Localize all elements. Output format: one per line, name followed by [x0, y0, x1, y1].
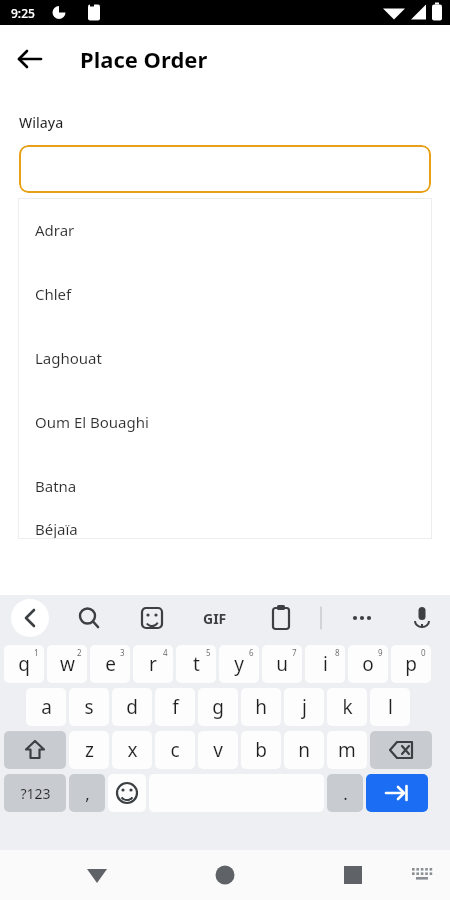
staticText: x: [127, 737, 138, 763]
button[interactable]: Béjaïa: [18, 518, 432, 539]
button[interactable]: t: [176, 645, 216, 683]
button[interactable]: h: [241, 688, 281, 726]
button[interactable]: s: [69, 688, 109, 726]
button[interactable]: f: [155, 688, 195, 726]
staticText: u: [276, 651, 288, 677]
staticText: Oum El Bouaghi: [35, 412, 149, 432]
button[interactable]: GIF: [203, 609, 227, 628]
button[interactable]: More options: [342, 598, 382, 638]
staticText: Place Order: [80, 44, 208, 74]
staticText: k: [342, 694, 353, 720]
button[interactable]: w: [47, 645, 87, 683]
button[interactable]: e: [90, 645, 130, 683]
staticText: Adrar: [35, 220, 75, 240]
button[interactable]: g: [198, 688, 238, 726]
staticText: t: [193, 651, 200, 677]
button[interactable]: Stickers: [132, 598, 172, 638]
button[interactable]: ?123: [4, 774, 66, 812]
button[interactable]: .: [327, 774, 363, 812]
button[interactable]: Emoji: [108, 774, 146, 812]
staticText: y: [234, 651, 244, 677]
staticText: e: [105, 651, 116, 677]
button[interactable]: j: [284, 688, 324, 726]
staticText: 9: [378, 647, 383, 658]
button[interactable]: a: [26, 688, 66, 726]
staticText: Chlef: [35, 284, 72, 304]
staticText: a: [41, 694, 52, 720]
staticText: j: [302, 694, 307, 720]
button[interactable]: Batna: [18, 454, 432, 518]
button[interactable]: Oum El Bouaghi: [18, 390, 432, 454]
button[interactable]: Recents: [331, 853, 375, 897]
staticText: 1: [34, 647, 39, 658]
staticText: q: [18, 651, 30, 677]
button[interactable]: [19, 145, 431, 193]
staticText: n: [298, 737, 310, 763]
button[interactable]: d: [112, 688, 152, 726]
staticText: Batna: [35, 476, 77, 496]
button[interactable]: o: [348, 645, 388, 683]
button[interactable]: i: [305, 645, 345, 683]
button[interactable]: q: [4, 645, 44, 683]
button[interactable]: Shift: [4, 731, 66, 769]
staticText: d: [126, 694, 138, 720]
staticText: 6: [249, 647, 254, 658]
staticText: z: [85, 737, 94, 763]
staticText: b: [255, 737, 267, 763]
button[interactable]: Home: [203, 853, 247, 897]
staticText: p: [405, 651, 417, 677]
button[interactable]: y: [219, 645, 259, 683]
button[interactable]: n: [284, 731, 324, 769]
staticText: v: [213, 737, 223, 763]
button[interactable]: Backspace: [370, 731, 432, 769]
staticText: 4: [163, 647, 168, 658]
staticText: 9:25: [11, 5, 35, 21]
button[interactable]: Laghouat: [18, 326, 432, 390]
staticText: 7: [292, 647, 297, 658]
button[interactable]: Clipboard: [261, 598, 301, 638]
button[interactable]: b: [241, 731, 281, 769]
staticText: 8: [335, 647, 340, 658]
staticText: m: [338, 737, 356, 763]
button[interactable]: Adrar: [18, 198, 432, 262]
button[interactable]: Back: [75, 853, 119, 897]
button[interactable]: Chlef: [18, 262, 432, 326]
button[interactable]: Search: [69, 598, 109, 638]
button[interactable]: k: [327, 688, 367, 726]
staticText: .: [343, 782, 348, 805]
staticText: g: [212, 694, 224, 720]
staticText: 5: [206, 647, 211, 658]
button[interactable]: m: [327, 731, 367, 769]
staticText: w: [60, 651, 75, 677]
button[interactable]: Back: [10, 39, 50, 79]
button[interactable]: Switch keyboard: [402, 855, 442, 895]
staticText: Wilaya: [19, 113, 64, 132]
button[interactable]: c: [155, 731, 195, 769]
button[interactable]: ,: [69, 774, 105, 812]
staticText: f: [172, 694, 179, 720]
staticText: o: [362, 651, 374, 677]
button[interactable]: Enter: [366, 774, 428, 812]
staticText: ,: [85, 782, 90, 805]
staticText: ?123: [20, 784, 51, 803]
button[interactable]: u: [262, 645, 302, 683]
staticText: s: [84, 694, 94, 720]
staticText: c: [170, 737, 180, 763]
staticText: Béjaïa: [35, 519, 78, 539]
button[interactable]: r: [133, 645, 173, 683]
staticText: l: [388, 694, 393, 720]
staticText: h: [255, 694, 267, 720]
button[interactable]: v: [198, 731, 238, 769]
staticText: Laghouat: [35, 348, 102, 368]
button[interactable]: z: [69, 731, 109, 769]
staticText: i: [323, 651, 328, 677]
staticText: 3: [120, 647, 125, 658]
button[interactable]: l: [370, 688, 410, 726]
button[interactable]: Close toolbar: [11, 599, 49, 637]
button[interactable]: x: [112, 731, 152, 769]
button[interactable]: Voice input: [402, 598, 442, 638]
staticText: 2: [77, 647, 82, 658]
button[interactable]: p: [391, 645, 431, 683]
staticText: r: [149, 651, 157, 677]
